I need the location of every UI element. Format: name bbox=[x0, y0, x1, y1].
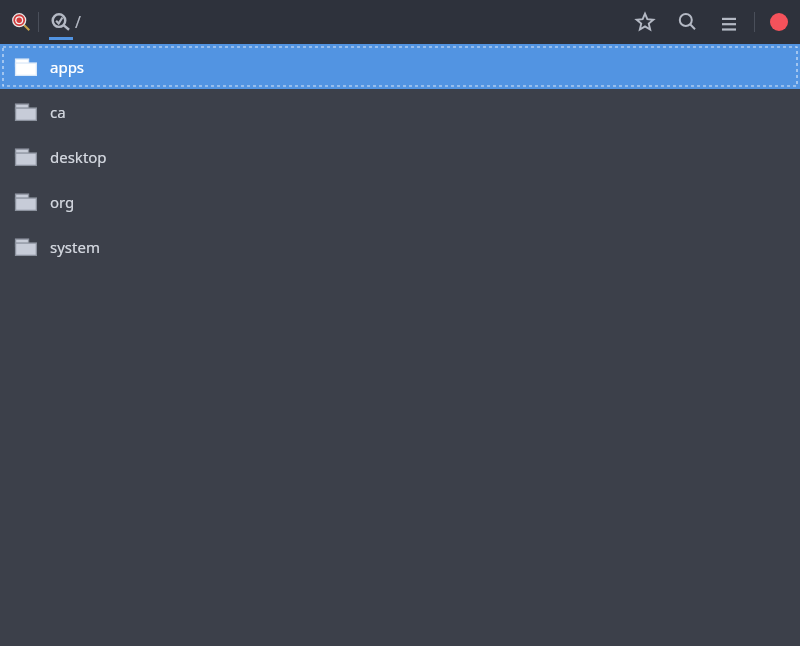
button[interactable]: / bbox=[45, 0, 89, 44]
button[interactable]: apps bbox=[0, 44, 800, 89]
button[interactable]: Menu bbox=[716, 9, 742, 35]
button[interactable]: ca bbox=[0, 89, 800, 134]
staticText: system bbox=[50, 237, 100, 257]
staticText: desktop bbox=[50, 147, 107, 167]
button[interactable]: org bbox=[0, 179, 800, 224]
button[interactable]: Bookmark bbox=[632, 9, 658, 35]
button[interactable]: Search bbox=[674, 9, 700, 35]
staticText: ca bbox=[50, 102, 66, 122]
button[interactable]: Application menu bbox=[8, 9, 34, 35]
button[interactable]: Record bbox=[766, 9, 792, 35]
staticText: apps bbox=[50, 57, 85, 77]
staticText: / bbox=[75, 11, 81, 33]
staticText: org bbox=[50, 192, 75, 212]
button[interactable]: desktop bbox=[0, 134, 800, 179]
button[interactable]: system bbox=[0, 224, 800, 269]
